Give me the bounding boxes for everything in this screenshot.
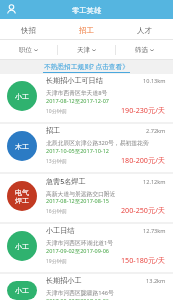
staticText: 2017-10-05至2017-10-12 [46,147,109,155]
staticText: 10分钟前 [46,108,67,115]
button[interactable]: 小工 [0,74,173,124]
staticText: 2017-08-12至2017-12-07 [46,97,109,105]
staticText: 天津市西青区华天道8号 [46,89,108,97]
staticText: 小工 [15,286,29,295]
staticText: 人才 [137,26,152,35]
staticText: 12.73km [143,227,166,235]
staticText: 12.12km [143,178,166,186]
staticText: 2.72km [146,127,166,135]
staticText: 快招 [21,26,36,35]
staticText: 13.2km [146,277,166,285]
staticText: 13分钟前 [46,158,67,165]
button[interactable]: 小工 [0,224,173,274]
staticText: 招工 [79,26,94,35]
staticText: 小工日结 [46,226,143,235]
button[interactable]: 人才 [115,19,173,39]
staticText: 190-230元/天 [121,105,166,115]
staticText: 小工 [15,242,29,251]
staticText: 180-200元/天 [121,155,166,165]
staticText: 小工 [15,92,29,101]
staticText: 2017-08-12至2017-08-15 [46,197,109,205]
staticText: 10.13km [143,77,166,85]
staticText: 电气 焊工 [15,188,29,205]
staticText: 长期招小工 [46,276,146,285]
staticText: 天津 [77,46,90,54]
staticText: 150-180元/天 [121,255,166,265]
staticText: 高新大道与景远路交口附近 [46,190,116,197]
staticText: 北辰北辰区京津公路320号，易初莲花旁 [46,139,149,147]
staticText: 19分钟前 [46,258,67,265]
staticText: 木工 [15,142,29,151]
staticText: 职位 [19,46,32,54]
button[interactable]: 筛选 [116,40,173,59]
button[interactable]: 不熟悉招工规则? 点击查看》 [0,60,173,74]
staticText: 急需5名焊工 [46,176,143,186]
button[interactable]: 职位 [0,40,57,59]
staticText: 2017-09-02至2017-09-06 [46,247,109,255]
staticText: 200-250元/天 [121,205,166,215]
button[interactable]: 招工 [57,19,115,39]
button[interactable]: 小工 [0,274,173,300]
staticText: 筛选 [135,46,148,54]
button[interactable]: 木工 [0,124,173,174]
staticText: 2017-09-02至2017-12-06 [46,297,109,300]
button[interactable]: 快招 [0,19,57,39]
staticText: 天津市河西区环湖北道1号 [46,239,114,247]
staticText: 长期招小工可日结 [46,76,143,85]
staticText: 零工英雄 [72,6,102,15]
button[interactable]: Profile [5,3,18,16]
button[interactable]: 电气 焊工 [0,174,173,224]
staticText: 天津市河西区陇疆路146号 [46,289,114,297]
staticText: 不熟悉招工规则? 点击查看》 [44,62,129,71]
staticText: 招工 [46,126,146,135]
staticText: 16分钟前 [46,208,67,215]
button[interactable]: 天津 [58,40,115,59]
